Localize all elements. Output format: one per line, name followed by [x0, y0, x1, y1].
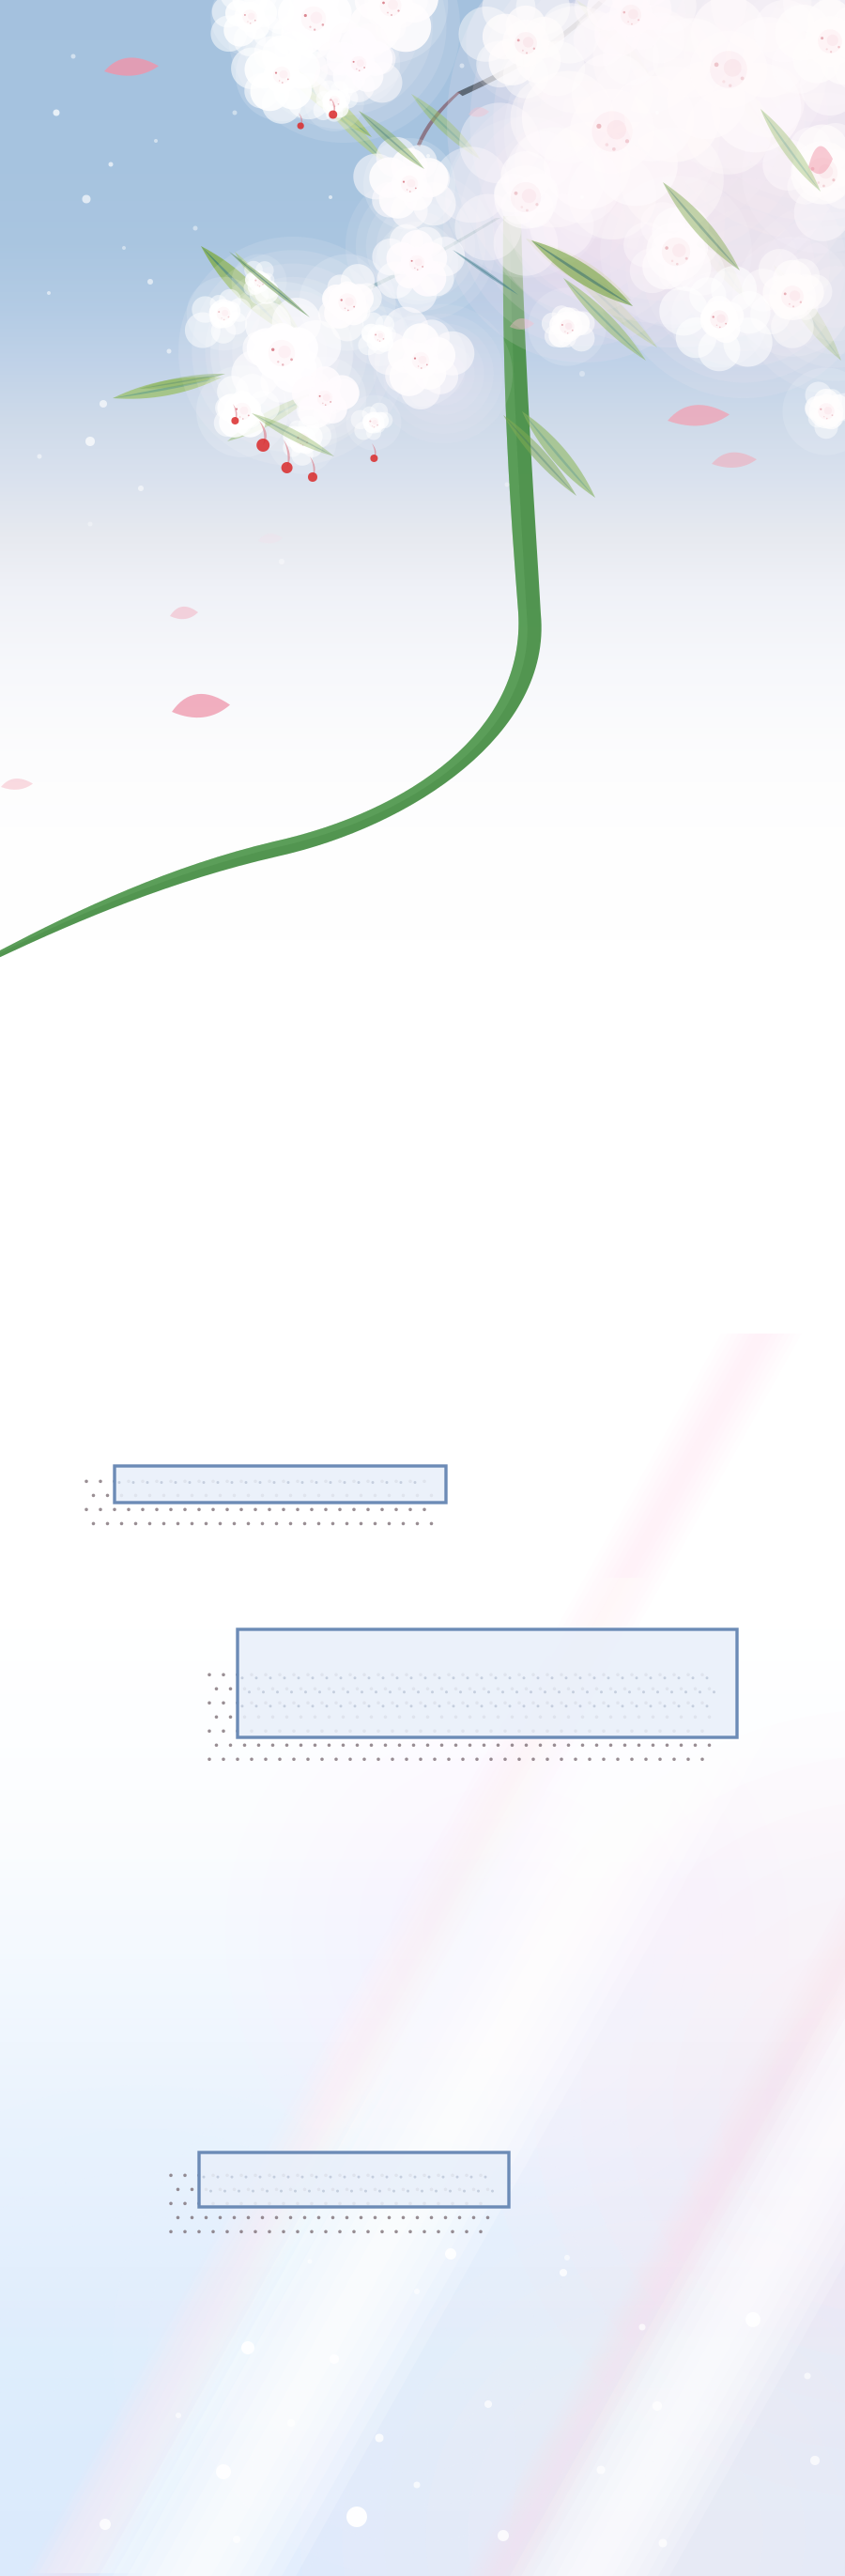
button[interactable]: Caption [0, 0, 845, 2576]
button[interactable]: Caption [0, 0, 845, 2576]
button[interactable]: Caption [0, 0, 845, 2576]
